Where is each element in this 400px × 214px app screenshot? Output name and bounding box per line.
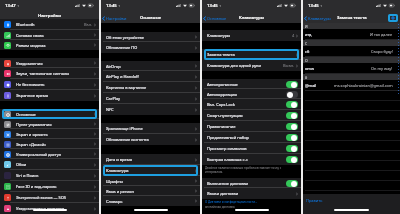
staticText: ms.sophiaukrainian@gmail.com [334, 83, 393, 88]
button[interactable]: Face ID и код-пароль [0, 181, 99, 192]
staticText: Язык и регион [106, 189, 134, 194]
button[interactable]: Автопрописные [202, 79, 301, 89]
staticText: Клавиатура [106, 168, 129, 173]
button[interactable]: Картинка в картинке [101, 82, 200, 93]
staticText: @mail [305, 83, 317, 88]
button[interactable]: Экранное время [0, 90, 99, 101]
staticText: # [305, 75, 308, 80]
staticText: Сотовая связь [16, 33, 44, 38]
staticText: Картинка в картинке [106, 85, 147, 90]
button[interactable]: Toggle [286, 91, 298, 98]
button[interactable]: Toggle [286, 180, 298, 187]
staticText: Вкл. Caps Lock [207, 102, 235, 107]
staticText: Пункт управления [16, 122, 52, 127]
staticText: 13:45 [308, 3, 319, 9]
button[interactable]: Основные [0, 109, 99, 119]
button[interactable]: AirDrop [101, 61, 200, 71]
button[interactable]: Toggle [286, 112, 298, 119]
button[interactable]: Замена текста [202, 49, 301, 60]
staticText: Экран «Домой» [16, 142, 47, 147]
button[interactable]: Toggle [286, 101, 298, 108]
staticText: omw [305, 66, 315, 71]
button[interactable]: Toggle [286, 156, 298, 163]
button[interactable]: Настройки [102, 16, 127, 21]
staticText: Клавиатуры [239, 15, 265, 21]
button[interactable]: Уведомления о контакте [0, 203, 99, 214]
staticText: Об этом устройстве [106, 35, 145, 40]
staticText: CarPlay [106, 96, 121, 101]
button[interactable]: Клавиатура [101, 165, 200, 176]
staticText: Уведомления [16, 61, 43, 66]
staticText: сб [305, 49, 310, 54]
button[interactable]: Siri и Поиск [0, 170, 99, 181]
button[interactable]: Toggle [286, 134, 298, 141]
button[interactable]: Клавиатуры [202, 30, 301, 41]
button[interactable]: omw [303, 63, 400, 74]
button[interactable]: Предиктивный набор [202, 132, 301, 143]
staticText: Обновление ПО [106, 45, 138, 50]
button[interactable]: NFC [101, 104, 200, 115]
button[interactable]: CarPlay [101, 93, 200, 104]
button[interactable]: Быстрая клавиша «.» [202, 154, 301, 165]
staticText: Языки диктовки [207, 191, 239, 196]
button[interactable]: Включение диктовки [202, 178, 301, 188]
button[interactable]: Экран и яркость [0, 129, 99, 139]
button[interactable]: Универсальный доступ [0, 149, 99, 159]
button[interactable]: AirPlay и Handoff [101, 71, 200, 82]
staticText: Универсальный доступ [16, 152, 62, 157]
button[interactable]: Экран «Домой» [0, 139, 99, 149]
staticText: 13:47 [5, 3, 16, 9]
button[interactable]: Правописание [202, 121, 301, 132]
button[interactable]: Экстренный вызов — SOS [0, 192, 99, 203]
staticText: Siri и Поиск [16, 173, 39, 178]
staticText: Словарь [106, 199, 123, 204]
button[interactable]: Клавиатуры [304, 16, 331, 21]
staticText: Скоро буду! [371, 49, 393, 54]
button[interactable]: Bluetooth [0, 19, 99, 30]
staticText: Клавиатуры [207, 33, 231, 38]
button[interactable]: Языки диктовки [202, 188, 301, 199]
button[interactable]: Словарь [101, 196, 200, 206]
button[interactable]: Пункт управления [0, 119, 99, 129]
button[interactable]: Add [388, 14, 398, 22]
staticText: Настройки [38, 13, 61, 19]
staticText: Замена текста [207, 52, 235, 57]
button[interactable]: Просмотр символов [202, 143, 301, 154]
staticText: Bluetooth [16, 22, 35, 27]
button[interactable]: Сотовая связь [0, 30, 99, 40]
button[interactable]: Toggle [286, 81, 298, 88]
staticText: Клавиатура для одной руки [207, 63, 261, 68]
button[interactable]: Уведомления [0, 58, 99, 68]
button[interactable]: Дата и время [101, 154, 200, 165]
button[interactable]: Автокоррекция [202, 89, 301, 99]
button[interactable]: Язык и регион [101, 186, 200, 196]
button[interactable]: Клавиатура для одной руки [202, 60, 301, 71]
staticText: AirPlay и Handoff [106, 74, 139, 79]
button[interactable]: Править [306, 198, 323, 203]
button[interactable]: сб [303, 46, 400, 57]
button[interactable]: Toggle [286, 145, 298, 152]
button[interactable]: Не беспокоить [0, 79, 99, 90]
staticText: Экстренный вызов — SOS [16, 195, 67, 200]
staticText: Звуки, тактильные сигналы [16, 71, 70, 76]
staticText: Вкл. [84, 22, 93, 27]
button[interactable]: Обои [0, 159, 99, 170]
staticText: Включение диктовки [207, 181, 249, 186]
button[interactable]: Шрифты [101, 176, 200, 186]
staticText: О Диктовке и конфиденциальности… [205, 200, 258, 204]
staticText: NFC [106, 107, 114, 112]
button[interactable]: Хранилище iPhone [101, 123, 200, 134]
button[interactable]: Вкл. Caps Lock [202, 99, 301, 110]
button[interactable]: @mail [303, 80, 400, 91]
button[interactable]: Toggle [286, 123, 298, 130]
button[interactable]: итд [303, 29, 400, 40]
button[interactable]: Основные [203, 16, 227, 21]
button[interactable]: Смарт-пунктуация [202, 110, 301, 121]
staticText: On my way! [371, 66, 393, 71]
button[interactable]: Звуки, тактильные сигналы [0, 68, 99, 79]
staticText: 13:45 [207, 3, 218, 9]
button[interactable]: Режим модема [0, 40, 99, 50]
button[interactable]: Обновление ПО [101, 42, 200, 53]
button[interactable]: Обновление контента [101, 134, 200, 145]
button[interactable]: Об этом устройстве [101, 32, 200, 42]
